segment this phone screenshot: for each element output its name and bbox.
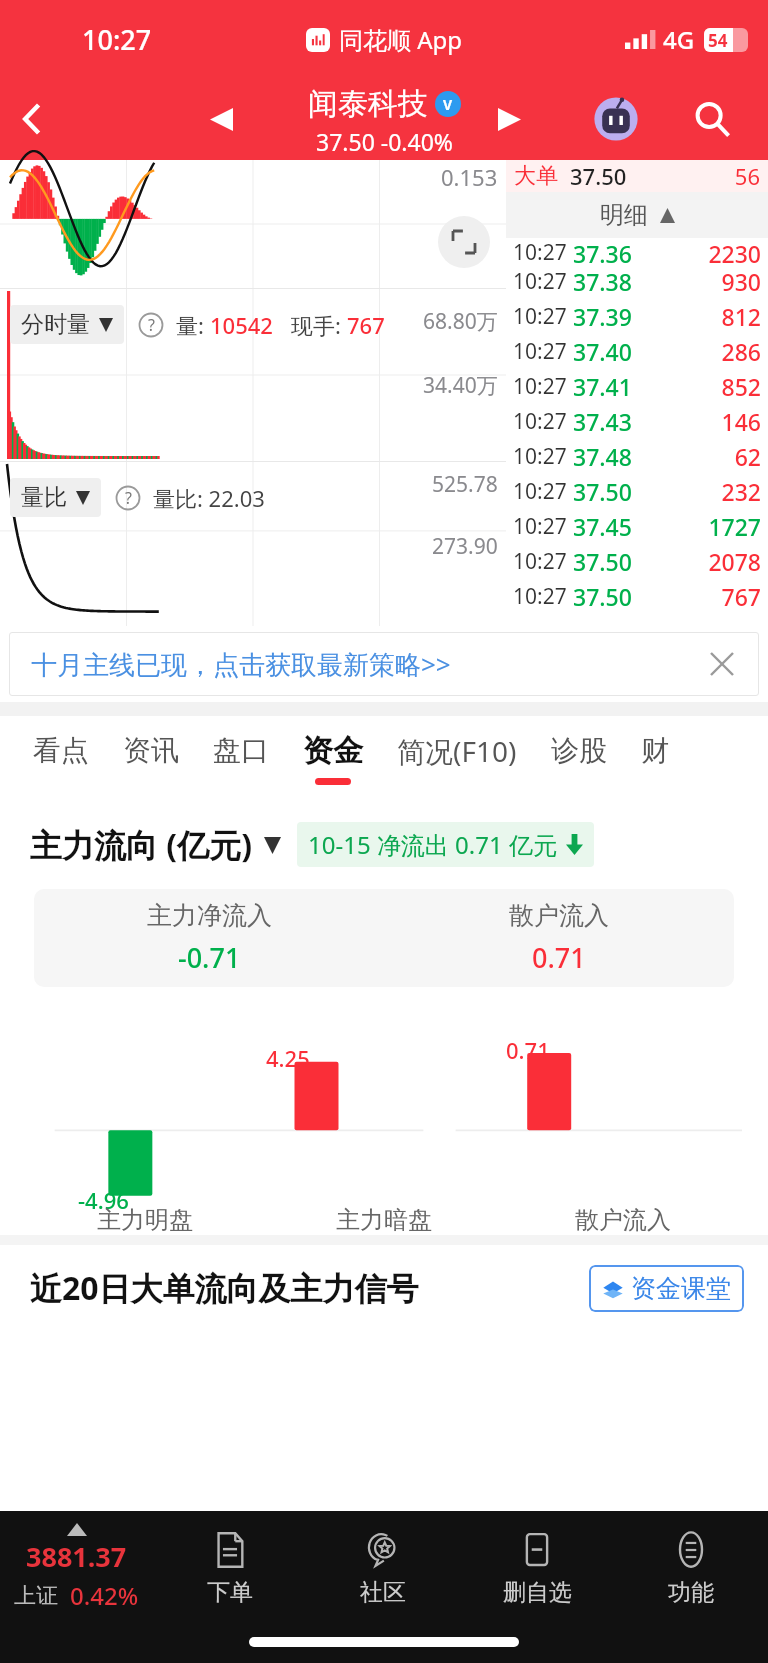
button[interactable]: 10:27 xyxy=(513,334,761,369)
button[interactable]: 10:27 xyxy=(513,509,761,544)
button[interactable]: Help xyxy=(115,485,141,511)
staticText: 37.48 xyxy=(573,441,632,472)
button[interactable]: Back xyxy=(0,86,66,152)
staticText: 10:27 xyxy=(513,407,567,436)
button[interactable]: 10:27 xyxy=(513,238,761,264)
button[interactable]: 盘口 xyxy=(196,716,286,800)
staticText: 主力净流入 xyxy=(147,900,272,931)
button[interactable]: 上证指数 xyxy=(0,1511,153,1623)
staticText: 十月主线已现，点击获取最新策略>> xyxy=(31,646,451,682)
button[interactable]: 财 xyxy=(624,716,686,800)
button[interactable]: 删自选 xyxy=(460,1511,614,1623)
button[interactable]: Close xyxy=(699,641,745,687)
staticText: 232 xyxy=(632,476,761,507)
button[interactable]: 功能 xyxy=(614,1511,768,1623)
staticText: -0.71 xyxy=(178,939,241,976)
staticText: 37.41 xyxy=(573,371,632,402)
staticText: 930 xyxy=(632,266,761,297)
button[interactable]: 看点 xyxy=(16,716,106,800)
staticText: 10:27 xyxy=(513,238,567,264)
button[interactable]: Help xyxy=(138,312,164,338)
staticText: 37.50 xyxy=(573,546,632,577)
staticText: 上证 xyxy=(14,1582,58,1610)
staticText: 散户流入 xyxy=(575,1205,671,1235)
staticText: 10:27 xyxy=(513,547,567,576)
button[interactable]: 10:27 xyxy=(513,369,761,404)
staticText: 37.36 xyxy=(573,238,632,264)
staticText: -4.96 xyxy=(78,1185,129,1215)
staticText: 852 xyxy=(632,371,761,402)
staticText: 273.90 xyxy=(432,532,498,561)
staticText: 4G xyxy=(663,23,695,56)
staticText: 0.42% xyxy=(70,1579,139,1612)
button[interactable]: 主力流向 (亿元) xyxy=(30,823,281,867)
button[interactable]: 分时量 xyxy=(10,305,124,344)
button[interactable]: 主力净流入 xyxy=(34,889,384,987)
staticText: 286 xyxy=(632,336,761,367)
button[interactable]: 10:27 xyxy=(513,544,761,579)
button[interactable]: 资金课堂 xyxy=(589,1265,744,1312)
staticText: 37.45 xyxy=(573,511,632,542)
button[interactable]: 资金 xyxy=(286,716,380,800)
button[interactable]: 量比 xyxy=(10,478,101,517)
staticText: 2230 xyxy=(632,238,761,264)
staticText: 社区 xyxy=(360,1578,406,1607)
button[interactable]: 10:27 xyxy=(513,299,761,334)
staticText: 37.39 xyxy=(573,301,632,332)
staticText: 10:27 xyxy=(82,21,152,58)
staticText: 10:27 xyxy=(513,337,567,366)
staticText: 4.25 xyxy=(266,1043,310,1073)
staticText: 看点 xyxy=(33,733,89,768)
button[interactable]: 10:27 xyxy=(513,439,761,474)
staticText: 诊股 xyxy=(551,733,607,768)
staticText: 10:27 xyxy=(513,477,567,506)
staticText: 54 xyxy=(708,29,728,52)
button[interactable]: 10:27 xyxy=(513,404,761,439)
staticText: 2078 xyxy=(632,546,761,577)
button[interactable]: Next stock xyxy=(480,90,538,148)
staticText: 10:27 xyxy=(513,267,567,296)
staticText: 10:27 xyxy=(513,302,567,331)
staticText: 散户流入 xyxy=(509,900,609,931)
staticText: 37.50 xyxy=(570,161,627,191)
button[interactable]: AI assistant xyxy=(586,89,646,149)
staticText: 0.71 xyxy=(506,1035,550,1065)
button[interactable]: 10:27 xyxy=(513,474,761,509)
button[interactable]: Search xyxy=(680,87,744,151)
staticText: 10:27 xyxy=(513,442,567,471)
staticText: 68.80万 xyxy=(423,307,498,336)
staticText: 主力流向 (亿元) xyxy=(30,823,253,867)
staticText: 下单 xyxy=(207,1578,253,1607)
button[interactable]: 10:27 xyxy=(513,264,761,299)
button[interactable]: 10:27 xyxy=(513,579,761,614)
button[interactable]: 简况(F10) xyxy=(380,716,534,800)
staticText: 财 xyxy=(641,733,669,768)
staticText: 62 xyxy=(632,441,761,472)
staticText: 0.71 xyxy=(532,939,586,976)
staticText: V xyxy=(443,95,453,114)
staticText: 量: xyxy=(176,310,210,340)
button[interactable]: 明细 xyxy=(506,192,768,238)
button[interactable]: Fullscreen xyxy=(438,216,490,268)
staticText: 10:27 xyxy=(513,372,567,401)
staticText: 量比: 22.03 xyxy=(153,483,265,513)
staticText: 10542 xyxy=(210,310,273,340)
button[interactable]: 十月主线已现，点击获取最新策略>> xyxy=(9,632,759,696)
staticText: 大单 xyxy=(514,162,558,190)
button[interactable]: 10-15 净流出 0.71 亿元 xyxy=(297,822,594,867)
staticText: ? xyxy=(125,487,132,509)
staticText: 37.50 -0.40% xyxy=(316,126,453,157)
button[interactable]: 社区 xyxy=(306,1511,460,1623)
button[interactable]: 下单 xyxy=(153,1511,306,1623)
staticText: 146 xyxy=(632,406,761,437)
staticText: 0.153 xyxy=(441,162,498,192)
button[interactable]: 诊股 xyxy=(534,716,624,800)
staticText: 资金课堂 xyxy=(631,1273,731,1304)
button[interactable]: 资讯 xyxy=(106,716,196,800)
staticText: 37.40 xyxy=(573,336,632,367)
staticText: 资金 xyxy=(303,732,363,770)
staticText: 34.40万 xyxy=(423,371,498,400)
button[interactable]: 散户流入 xyxy=(384,889,734,987)
button[interactable]: Previous stock xyxy=(192,90,250,148)
staticText: 37.43 xyxy=(573,406,632,437)
